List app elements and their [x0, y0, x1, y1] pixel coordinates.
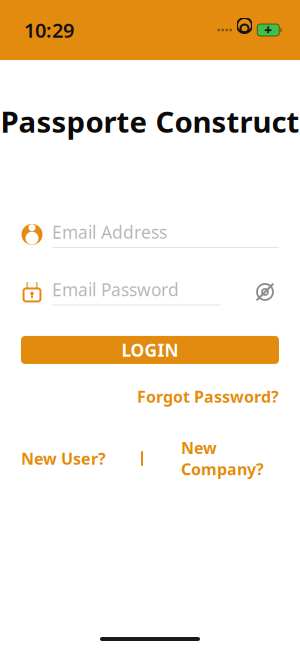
button[interactable]: Show password: [251, 278, 279, 306]
staticText: Email Password: [52, 278, 179, 301]
staticText: LOGIN: [121, 338, 178, 361]
button[interactable]: New User?: [21, 448, 106, 469]
button[interactable]: LOGIN: [21, 336, 279, 364]
staticText: New Company?: [181, 437, 264, 480]
staticText: +: [264, 21, 272, 39]
staticText: Email Address: [52, 220, 167, 243]
staticText: Forgot Password?: [137, 386, 279, 407]
button[interactable]: Forgot Password?: [137, 386, 279, 407]
staticText: Passporte Construct: [0, 102, 299, 141]
staticText: New User?: [21, 448, 106, 469]
staticText: 10:29: [24, 17, 74, 43]
button[interactable]: New Company?: [181, 437, 264, 480]
